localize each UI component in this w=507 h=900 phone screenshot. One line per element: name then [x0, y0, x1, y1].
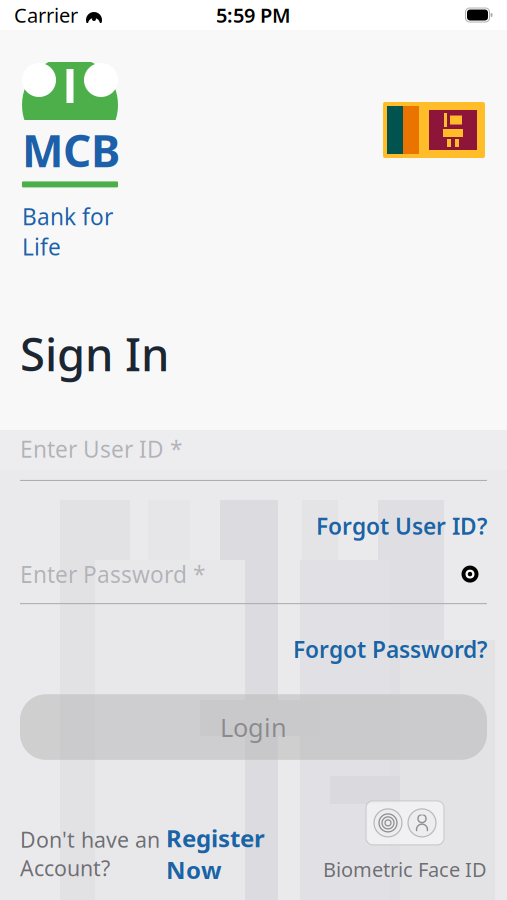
staticText: Forgot Password?	[293, 634, 487, 664]
button[interactable]: Forgot User ID?	[0, 481, 507, 549]
button[interactable]: Biometric Face ID login	[323, 800, 487, 882]
staticText: 5:59 PM	[216, 2, 291, 28]
staticText: Biometric Face ID	[323, 856, 487, 882]
staticText: Register Now	[166, 822, 265, 886]
button[interactable]: Forgot Password?	[0, 604, 507, 672]
button[interactable]: Show password	[453, 565, 487, 583]
staticText: Enter Password *	[20, 559, 205, 589]
staticText: Sign In	[20, 324, 169, 384]
staticText: Forgot User ID?	[316, 511, 487, 541]
staticText: Carrier	[14, 2, 78, 28]
staticText: Bank for Life	[22, 201, 113, 262]
staticText: Don't have an Account?	[20, 825, 160, 882]
button[interactable]: Login	[20, 694, 487, 760]
staticText: MCB	[22, 121, 120, 179]
staticText: Login	[220, 710, 287, 744]
staticText: Enter User ID *	[20, 434, 182, 464]
button[interactable]: Don't have an Account?	[20, 800, 265, 886]
